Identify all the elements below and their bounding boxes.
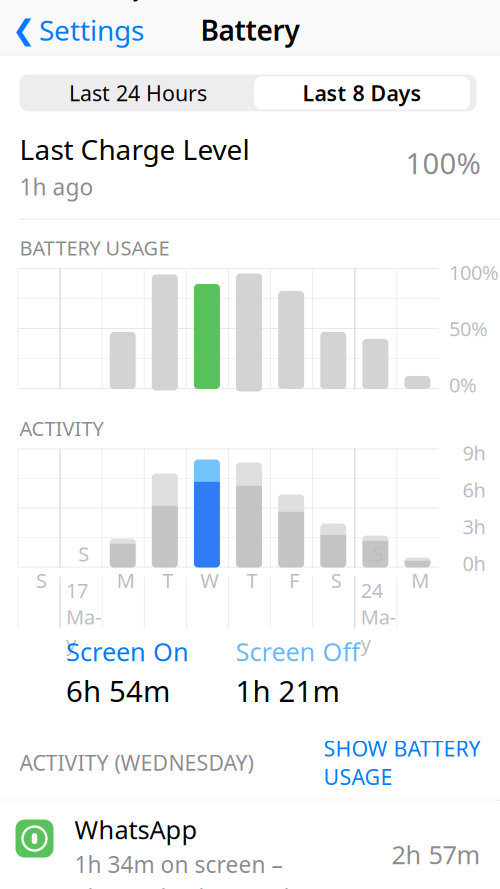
staticText: Battery [200, 11, 299, 48]
staticText: 100% [449, 259, 499, 286]
button[interactable]: Last 24 Hours [24, 74, 252, 111]
staticText: 1h ago [19, 172, 93, 202]
staticText: T [162, 567, 173, 594]
staticText: 6h [462, 476, 485, 503]
button[interactable]: ❮ [0, 3, 144, 56]
staticText: 9h [462, 439, 485, 466]
staticText: 1h 34m on screen – [74, 849, 282, 879]
staticText: 0h [462, 550, 485, 577]
staticText: S [331, 567, 342, 594]
staticText: 50% [449, 315, 488, 342]
staticText: 100% [405, 143, 480, 182]
staticText: Last 8 Days [302, 79, 421, 107]
button[interactable]: SHOW BATTERY USAGE [323, 734, 480, 791]
staticText: 6h 54m [66, 671, 170, 710]
staticText: 3h [462, 513, 485, 540]
staticText: Screen Off [235, 634, 359, 668]
staticText: 24 May [361, 577, 396, 657]
staticText: T [246, 567, 257, 594]
staticText: BATTERY USAGE [19, 234, 169, 261]
staticText: 1h 23m background [74, 882, 289, 889]
staticText: ACTIVITY (WEDNESDAY) [19, 748, 253, 777]
staticText: M [411, 567, 429, 594]
staticText: 17 May [66, 577, 101, 657]
staticText: M [117, 567, 135, 594]
staticText: 0% [449, 371, 477, 398]
staticText: 1h 21m [235, 671, 339, 710]
staticText: WhatsApp [74, 813, 197, 846]
staticText: Last Charge Level [19, 130, 249, 168]
staticText: 2h 57m [391, 838, 480, 871]
staticText: Last 24 Hours [69, 79, 207, 107]
staticText: Settings [39, 11, 144, 48]
staticText: S [373, 540, 384, 567]
button[interactable]: WhatsApp [0, 800, 498, 889]
staticText: ❮ [12, 14, 35, 46]
staticText: ACTIVITY [19, 415, 103, 442]
staticText: Maxis StayAtHome [44, 0, 220, 2]
staticText: SHOW BATTERY USAGE [323, 734, 480, 791]
staticText: Screen On [66, 634, 189, 668]
staticText: W [200, 567, 219, 594]
staticText: S [78, 540, 89, 567]
staticText: S [36, 567, 47, 594]
staticText: F [289, 567, 299, 594]
button[interactable]: Last 8 Days [252, 74, 472, 111]
